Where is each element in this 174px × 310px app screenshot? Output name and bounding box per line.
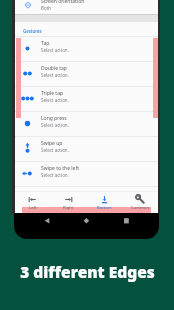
- staticText: Tap: [41, 40, 50, 47]
- staticText: 3 different Edges: [20, 261, 155, 282]
- staticText: Select action.: [41, 172, 69, 178]
- button[interactable]: Bottom: [86, 191, 122, 214]
- staticText: Both: [41, 5, 52, 11]
- staticText: Double tap: [41, 65, 67, 72]
- staticText: Right: [63, 205, 74, 211]
- staticText: Screen orientation: [41, 0, 85, 5]
- staticText: Common: [131, 205, 150, 211]
- staticText: Select action.: [41, 72, 69, 78]
- button[interactable]: Long press: [15, 111, 158, 136]
- staticText: Swipe to the left: [41, 165, 79, 172]
- staticText: Select action.: [41, 47, 69, 53]
- button[interactable]: Double tap: [15, 61, 158, 86]
- button[interactable]: Screen orientation: [15, 0, 158, 15]
- staticText: Bottom: [97, 205, 112, 211]
- staticText: Left: [29, 205, 37, 211]
- staticText: Select action.: [41, 97, 69, 103]
- staticText: Triple tap: [41, 90, 64, 97]
- button[interactable]: Left: [15, 191, 50, 214]
- staticText: Gestures: [23, 28, 42, 34]
- button[interactable]: Common: [122, 191, 158, 214]
- staticText: Swipe up: [41, 140, 63, 147]
- staticText: Long press: [41, 115, 67, 122]
- button[interactable]: Swipe up: [15, 136, 158, 161]
- button[interactable]: Right: [50, 191, 86, 214]
- button[interactable]: Swipe to the left: [15, 161, 158, 186]
- button[interactable]: Triple tap: [15, 86, 158, 111]
- button[interactable]: Tap: [15, 36, 158, 61]
- staticText: Select action.: [41, 122, 69, 128]
- staticText: Select action.: [41, 147, 69, 153]
